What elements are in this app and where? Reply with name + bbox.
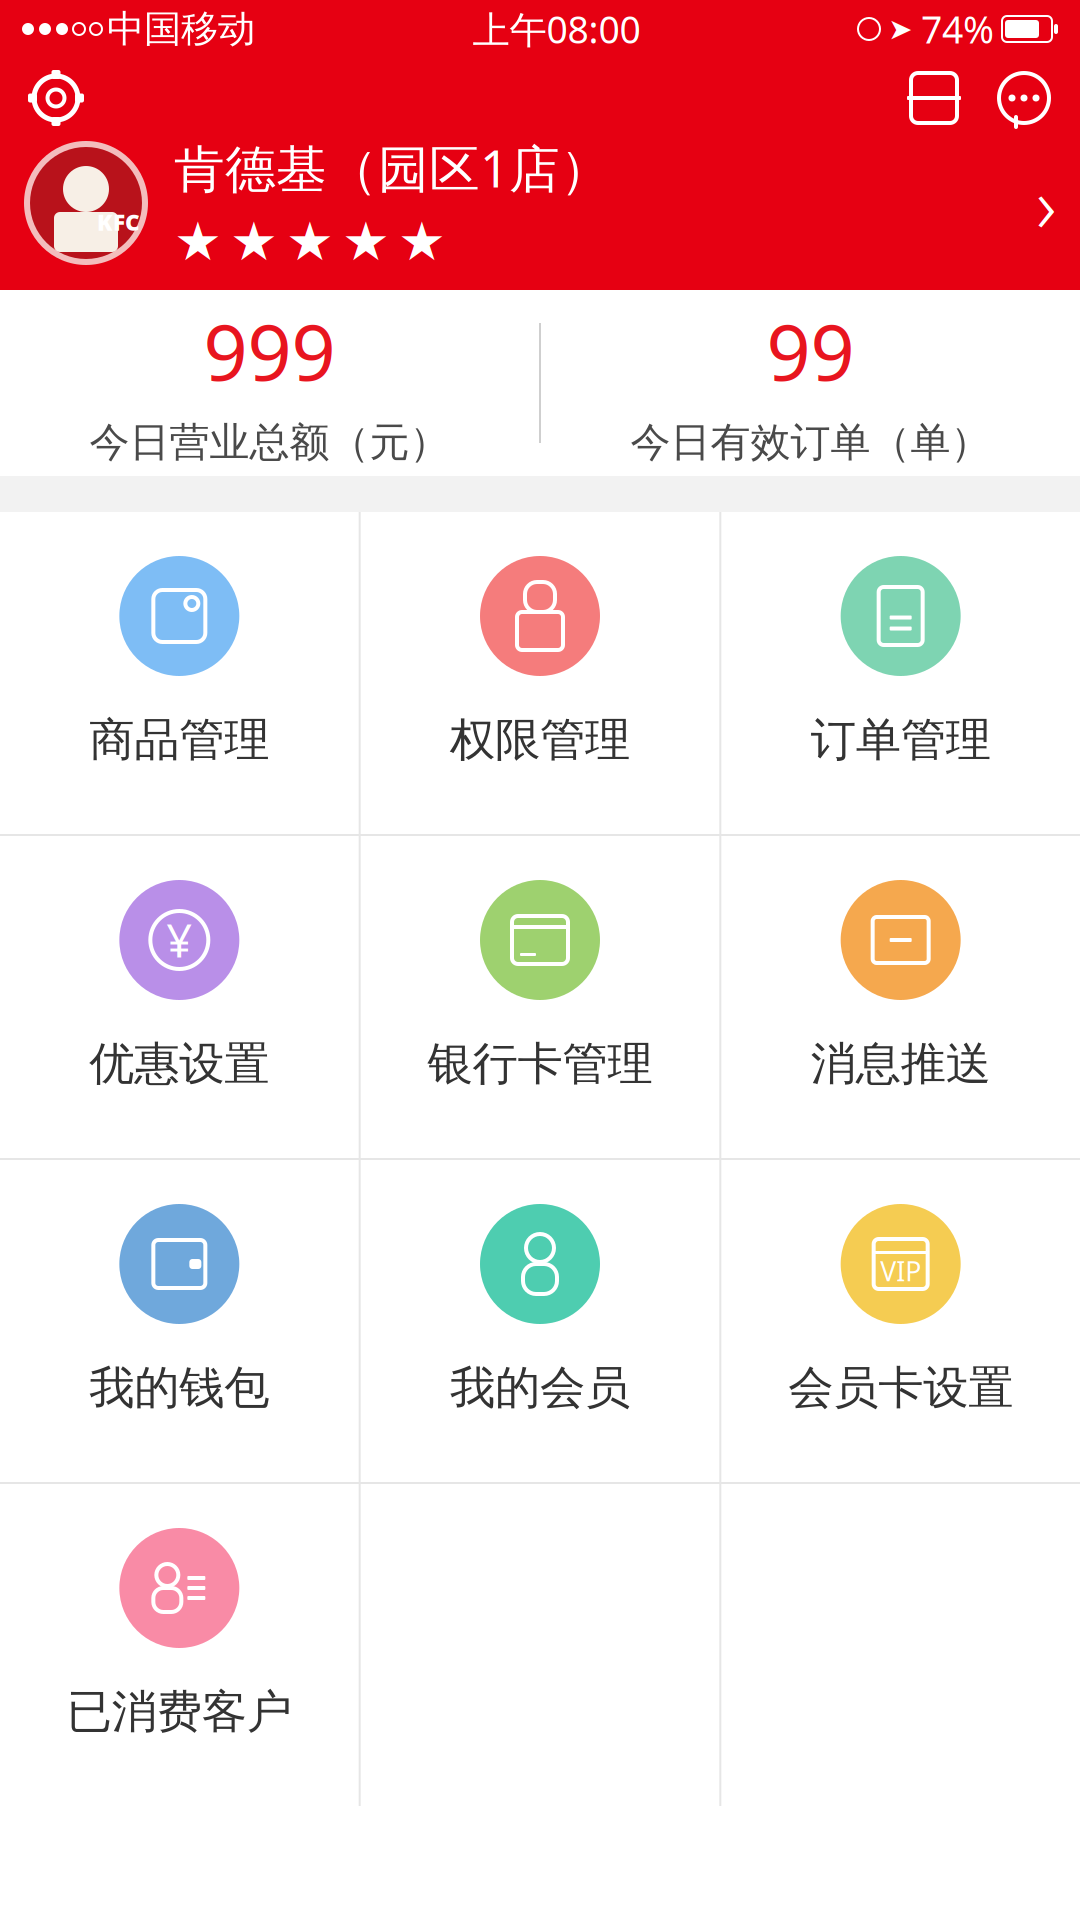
staticText: › [1036,152,1056,254]
staticText: 99 [766,299,854,402]
staticText: KFC [97,207,140,237]
staticText: 74% [921,4,994,54]
staticText: 消息推送 [811,1036,991,1092]
staticText: 今日有效订单（单） [630,418,990,467]
button[interactable]: 消息 [986,60,1062,136]
staticText: 上午08:00 [472,4,640,54]
staticText: 银行卡管理 [427,1036,652,1092]
staticText: 订单管理 [811,712,991,768]
button[interactable]: KFC [0,138,1080,268]
button[interactable]: ¥ [0,836,359,1158]
staticText: 商品管理 [89,712,269,768]
button[interactable]: 切换 [896,60,972,136]
button[interactable]: 消息推送 [721,836,1080,1158]
button[interactable]: 权限管理 [361,512,719,834]
button[interactable]: 我的会员 [361,1160,719,1482]
button[interactable]: 已消费客户 [0,1484,359,1806]
button[interactable]: 设置 [18,60,94,136]
button[interactable]: 订单管理 [721,512,1080,834]
staticText: ★ [174,211,222,272]
button[interactable]: 99 [541,290,1080,476]
button[interactable]: 商品管理 [0,512,359,834]
staticText: VIP [880,1253,921,1289]
staticText: 肯德基（园区1店） [174,134,611,201]
staticText: 权限管理 [450,712,630,768]
staticText: ★ [230,211,278,272]
staticText: 我的钱包 [89,1360,269,1416]
staticText: ★ [398,211,446,272]
staticText: 今日营业总额（元） [89,418,449,467]
staticText: 会员卡设置 [788,1360,1013,1416]
button[interactable]: 银行卡管理 [361,836,719,1158]
button[interactable]: 我的钱包 [0,1160,359,1482]
staticText: 999 [203,299,335,402]
button[interactable]: VIP [721,1160,1080,1482]
staticText: ★ [286,211,334,272]
staticText: 优惠设置 [89,1036,269,1092]
button[interactable]: 999 [0,290,539,476]
staticText: 中国移动 [107,6,255,52]
staticText: ★ [342,211,390,272]
staticText: 我的会员 [450,1360,630,1416]
staticText: 已消费客户 [67,1684,292,1740]
staticText: ➤ [888,12,913,46]
staticText: ¥ [166,910,192,970]
